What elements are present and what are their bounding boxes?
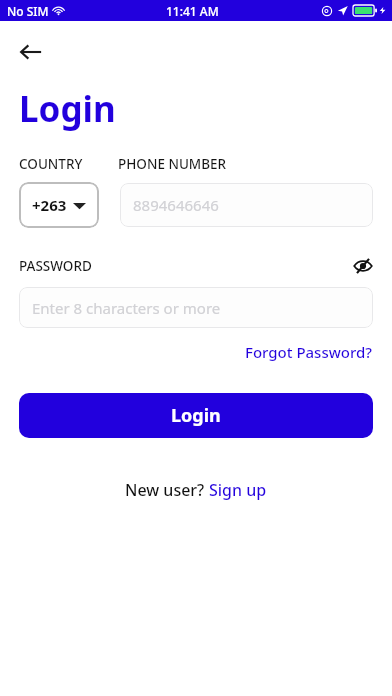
staticText: Login — [171, 403, 221, 428]
button[interactable]: Show password — [348, 251, 378, 281]
button[interactable]: Back — [10, 31, 52, 73]
staticText: Enter 8 characters or more — [32, 298, 221, 318]
staticText: Forgot Password? — [245, 342, 373, 362]
staticText: PASSWORD — [19, 257, 92, 275]
staticText: Sign up — [209, 479, 267, 501]
staticText: 11:41 AM — [166, 3, 219, 19]
staticText: Login — [19, 85, 116, 133]
button[interactable]: Forgot Password? — [237, 338, 392, 366]
staticText: No SIM — [7, 3, 49, 19]
button[interactable]: +263 — [19, 182, 99, 228]
button[interactable]: 8894646646 — [120, 183, 373, 227]
staticText: COUNTRY — [19, 155, 83, 173]
staticText: +263 — [32, 195, 67, 215]
button[interactable]: Login — [19, 393, 373, 438]
staticText: PHONE NUMBER — [118, 155, 227, 173]
button[interactable]: New user? — [125, 479, 267, 501]
button[interactable]: Enter 8 characters or more — [19, 287, 373, 328]
staticText: 8894646646 — [133, 195, 219, 215]
staticText: New user? — [125, 479, 209, 501]
